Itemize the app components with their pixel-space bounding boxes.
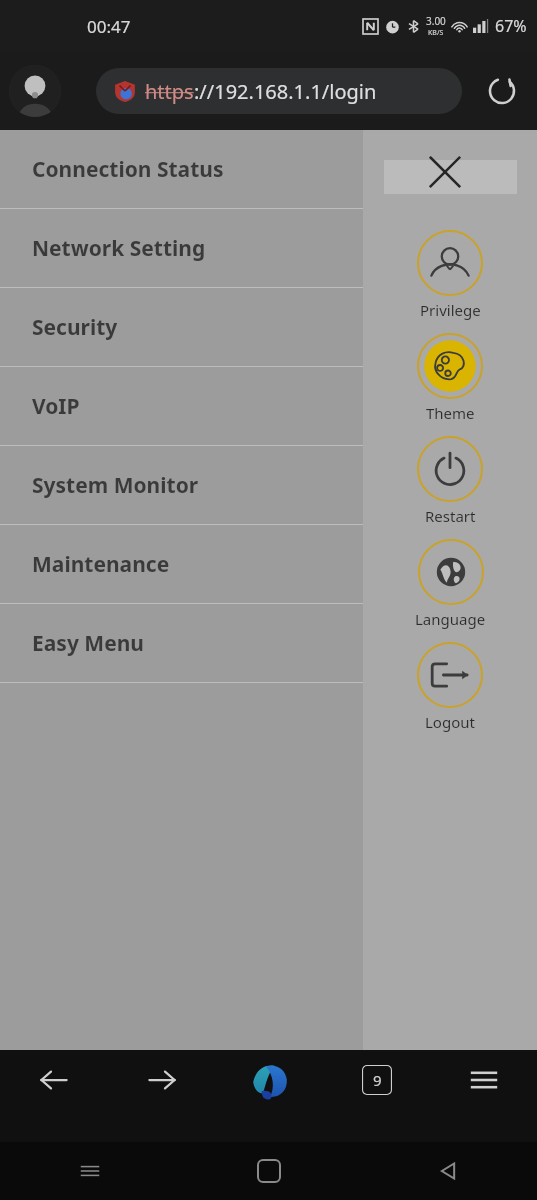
button[interactable]: Maintenance [0,525,363,604]
staticText: Easy Menu [32,629,144,658]
button[interactable]: Privilege [417,230,483,320]
staticText: Maintenance [32,550,170,579]
staticText: System Monitor [32,471,199,500]
button[interactable]: Tabs [323,1050,430,1122]
staticText: Connection Status [32,155,224,184]
button[interactable]: Back [0,1050,108,1122]
staticText: 00:47 [87,15,131,38]
staticText: Theme [426,403,475,423]
button[interactable]: VoIP [0,367,363,446]
button[interactable]: Home [179,1142,358,1200]
button[interactable]: Back [358,1142,537,1200]
staticText: 67% [495,15,527,37]
button[interactable]: Close [384,160,517,194]
staticText: Network Setting [32,234,206,263]
button[interactable]: Connection Status [0,130,363,209]
button[interactable]: Reload [481,70,523,112]
button[interactable]: Language [415,539,486,629]
button[interactable]: Forward [108,1050,216,1122]
staticText: 9 [373,1070,382,1090]
staticText: Language [415,609,486,629]
button[interactable]: https [96,68,462,114]
button[interactable]: Copilot [216,1050,323,1122]
button[interactable]: System Monitor [0,446,363,525]
staticText: 3.00 [426,14,446,28]
button[interactable]: Network Setting [0,209,363,288]
button[interactable]: Easy Menu [0,604,363,683]
button[interactable]: Security [0,288,363,367]
button[interactable]: Theme [417,333,483,423]
staticText: KB/S [428,28,444,38]
staticText: https [145,78,194,105]
button[interactable]: Menu [430,1050,537,1122]
staticText: ://192.168.1.1/login [194,78,377,105]
button[interactable]: Recents [0,1142,179,1200]
button[interactable]: Restart [417,436,483,526]
staticText: Logout [425,712,475,732]
button[interactable]: Profile [9,65,61,117]
staticText: VoIP [32,392,80,421]
staticText: Privilege [420,300,481,320]
button[interactable]: Logout [417,642,483,732]
staticText: Restart [425,506,476,526]
staticText: Security [32,313,118,342]
